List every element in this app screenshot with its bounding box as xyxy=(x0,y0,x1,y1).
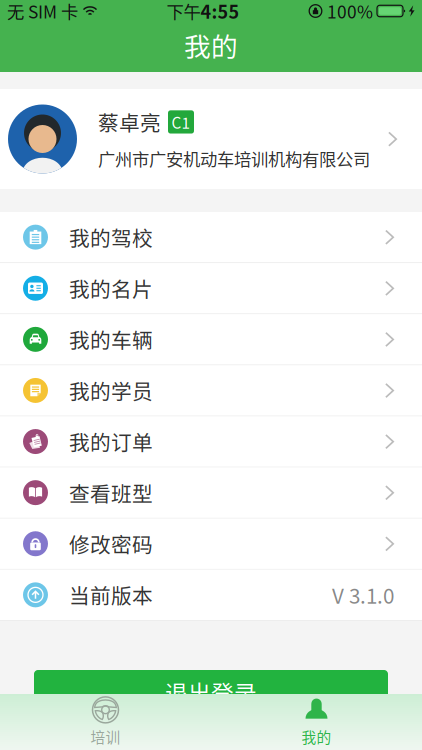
button[interactable]: 修改密码 xyxy=(0,519,422,570)
staticText: 查看班型 xyxy=(69,478,153,508)
button[interactable]: 查看班型 xyxy=(0,467,422,519)
staticText: 100% xyxy=(327,0,373,24)
button[interactable]: 培训 xyxy=(0,694,211,750)
staticText: 广州市广安机动车培训机构有限公司 xyxy=(98,146,370,171)
staticText: V 3.1.0 xyxy=(332,580,394,610)
button[interactable]: 当前版本 xyxy=(0,570,422,621)
staticText: C1 xyxy=(171,111,190,133)
button[interactable]: 我的学员 xyxy=(0,365,422,416)
staticText: 我的 xyxy=(301,726,331,747)
staticText: 蔡卓亮 xyxy=(98,107,161,137)
staticText: 我的车辆 xyxy=(69,324,153,354)
button[interactable]: 我的订单 xyxy=(0,416,422,467)
staticText: 4:55 xyxy=(200,0,239,24)
button[interactable]: 我的 xyxy=(211,694,422,750)
staticText: 我的名片 xyxy=(69,273,153,303)
staticText: 修改密码 xyxy=(69,529,153,559)
button[interactable]: 退出登录 xyxy=(0,670,422,714)
staticText: 无 SIM 卡 xyxy=(7,0,78,24)
staticText: 我的驾校 xyxy=(69,222,153,252)
staticText: 下午 xyxy=(166,0,200,24)
button[interactable]: 我的驾校 xyxy=(0,212,422,263)
staticText: 退出登录 xyxy=(165,676,257,708)
button[interactable]: 蔡卓亮 xyxy=(0,89,422,189)
staticText: 我的订单 xyxy=(69,427,153,456)
staticText: 培训 xyxy=(90,726,120,747)
staticText: 我的学员 xyxy=(69,375,153,405)
button[interactable]: 我的车辆 xyxy=(0,314,422,365)
staticText: 我的 xyxy=(184,26,238,64)
staticText: 当前版本 xyxy=(69,580,153,610)
button[interactable]: 我的名片 xyxy=(0,263,422,314)
